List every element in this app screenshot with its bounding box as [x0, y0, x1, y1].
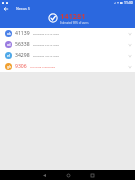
staticText: 9306: [15, 63, 27, 70]
button[interactable]: Recent apps: [80, 170, 104, 180]
staticText: 56338: [15, 41, 30, 48]
staticText: ef: [7, 54, 10, 58]
button[interactable]: ab: [0, 28, 135, 39]
staticText: cd: [7, 43, 11, 47]
staticText: 11:30: [124, 0, 133, 5]
staticText: Estimated 18% of users: [33, 54, 60, 57]
staticText: 34298: [15, 52, 30, 59]
staticText: Estimated 24% of users: [33, 43, 60, 46]
staticText: 41139: [15, 30, 30, 37]
staticText: 141281: [60, 11, 86, 21]
button[interactable]: gh: [0, 61, 135, 72]
button[interactable]: Back: [2, 5, 10, 13]
button[interactable]: Back: [32, 170, 56, 180]
staticText: Estimated 98% of users: [60, 21, 89, 25]
staticText: Estimated 31% of users: [33, 32, 60, 35]
staticText: gh: [7, 65, 11, 69]
button[interactable]: cd: [0, 39, 135, 50]
button[interactable]: Home: [56, 170, 80, 180]
staticText: This score is abnormal: [30, 65, 56, 68]
button[interactable]: ef: [0, 50, 135, 61]
staticText: Nexus 5: [16, 6, 30, 11]
staticText: ab: [7, 32, 11, 36]
